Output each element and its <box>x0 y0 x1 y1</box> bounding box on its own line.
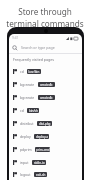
staticText: exit-sh <box>36 173 46 177</box>
staticText: logout <box>20 172 31 177</box>
staticText: distribut <box>20 121 34 126</box>
staticText: /usr/bin <box>28 70 40 74</box>
staticText: deploy <box>20 134 31 139</box>
staticText: Frequently visited pages <box>13 57 55 62</box>
staticText: createdb <box>40 96 53 100</box>
staticText: bgcreate <box>20 82 35 87</box>
staticText: Search or type page <box>21 45 55 50</box>
button[interactable]: input <box>9 156 82 169</box>
staticText: cd <box>20 69 24 74</box>
staticText: pdprim <box>20 147 32 152</box>
button[interactable]: pdprim <box>9 143 82 156</box>
staticText: bin/sh <box>29 109 38 113</box>
staticText: dist-pkg <box>39 122 51 126</box>
staticText: 9:41 <box>12 36 19 40</box>
button[interactable]: bgcreate <box>9 91 82 104</box>
staticText: deploy-x <box>36 135 48 139</box>
staticText: input <box>20 160 29 165</box>
button[interactable]: distribut <box>9 117 82 130</box>
button[interactable]: deploy <box>9 130 82 143</box>
staticText: bgcreate <box>20 95 35 100</box>
button[interactable]: logout <box>9 169 82 180</box>
button[interactable]: bgcreate <box>9 78 82 91</box>
staticText: stdin-io <box>34 161 45 165</box>
other: Search <box>12 45 18 51</box>
button[interactable]: Search <box>9 42 82 53</box>
staticText: cd <box>20 108 24 113</box>
staticText: prim-cmd <box>36 148 50 152</box>
staticText: terminal commands <box>6 18 84 29</box>
button[interactable]: cd <box>9 65 82 78</box>
staticText: createdb <box>40 83 53 87</box>
button[interactable]: cd <box>9 104 82 117</box>
staticText: Store through <box>18 6 72 17</box>
